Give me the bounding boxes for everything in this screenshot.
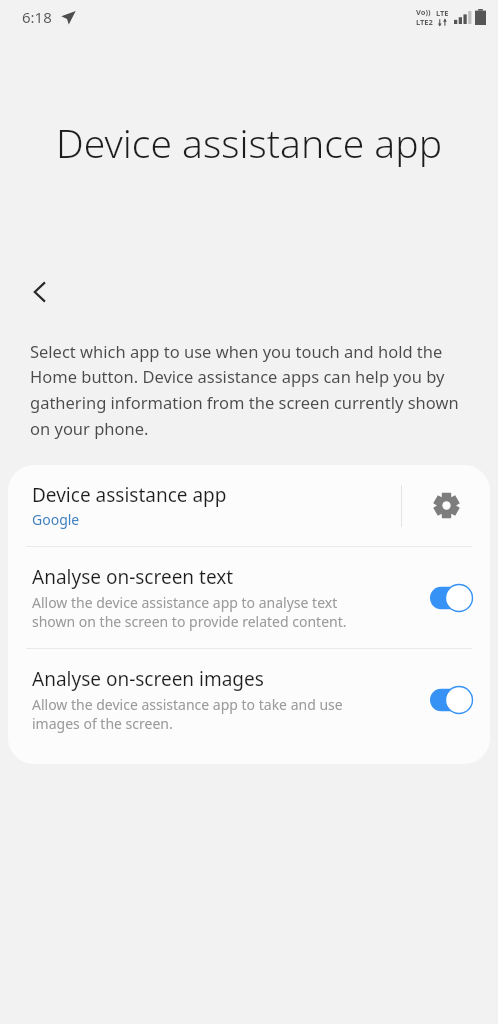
staticText: Vo)) bbox=[416, 7, 431, 17]
staticText: Analyse on-screen text bbox=[32, 564, 234, 590]
button[interactable]: Analyse on-screen text bbox=[416, 547, 490, 648]
staticText: Allow the device assistance app to take … bbox=[32, 695, 343, 733]
button[interactable]: Device assistance app bbox=[8, 465, 490, 546]
button[interactable]: Assistance app settings bbox=[402, 465, 490, 546]
staticText: 6:18 bbox=[22, 7, 52, 27]
staticText: Allow the device assistance app to analy… bbox=[32, 593, 347, 631]
staticText: LTE2 bbox=[416, 17, 433, 27]
staticText: Google bbox=[32, 510, 80, 529]
button[interactable]: Analyse on-screen images bbox=[416, 649, 490, 750]
button[interactable]: Analyse on-screen images bbox=[8, 649, 490, 750]
button[interactable]: Analyse on-screen text bbox=[8, 547, 490, 648]
button[interactable]: Back bbox=[14, 266, 66, 318]
staticText: Device assistance app bbox=[32, 482, 227, 508]
staticText: Analyse on-screen images bbox=[32, 666, 264, 692]
staticText: Select which app to use when you touch a… bbox=[30, 340, 470, 440]
staticText: LTE bbox=[436, 8, 449, 18]
staticText: Device assistance app bbox=[56, 116, 442, 169]
